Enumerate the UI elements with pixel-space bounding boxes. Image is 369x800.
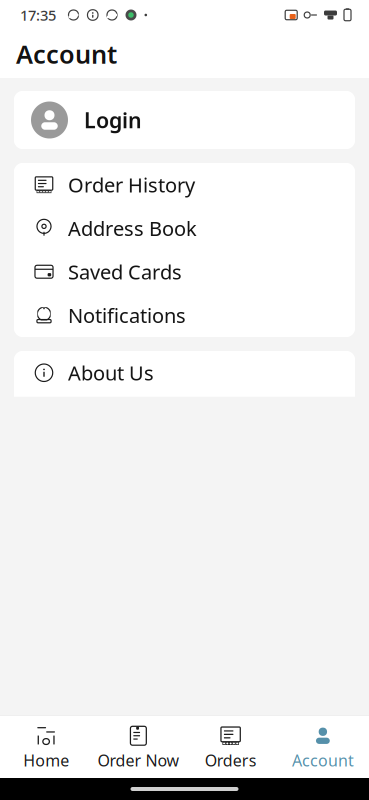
button[interactable]: Notifications <box>14 293 355 337</box>
staticText: Address Book <box>68 215 197 242</box>
staticText: Login <box>84 106 142 134</box>
button[interactable]: About Us <box>14 351 355 394</box>
staticText: Notifications <box>68 302 186 329</box>
staticText: Account <box>292 750 354 771</box>
button[interactable]: Home <box>0 716 92 778</box>
staticText: Order History <box>68 171 195 198</box>
staticText: Home <box>23 750 69 771</box>
button[interactable]: Login <box>14 91 355 149</box>
button[interactable]: Orders <box>184 716 277 778</box>
button[interactable]: Saved Cards <box>14 250 355 293</box>
staticText: Account <box>16 37 117 71</box>
staticText: Orders <box>205 750 257 771</box>
button[interactable]: Order Now <box>92 716 184 778</box>
staticText: 17:35 <box>20 5 56 25</box>
staticText: Saved Cards <box>68 258 182 285</box>
button[interactable]: Account <box>277 716 369 778</box>
staticText: Order Now <box>97 750 179 771</box>
button[interactable]: Address Book <box>14 206 355 250</box>
staticText: About Us <box>68 359 154 386</box>
button[interactable]: Order History <box>14 163 355 206</box>
